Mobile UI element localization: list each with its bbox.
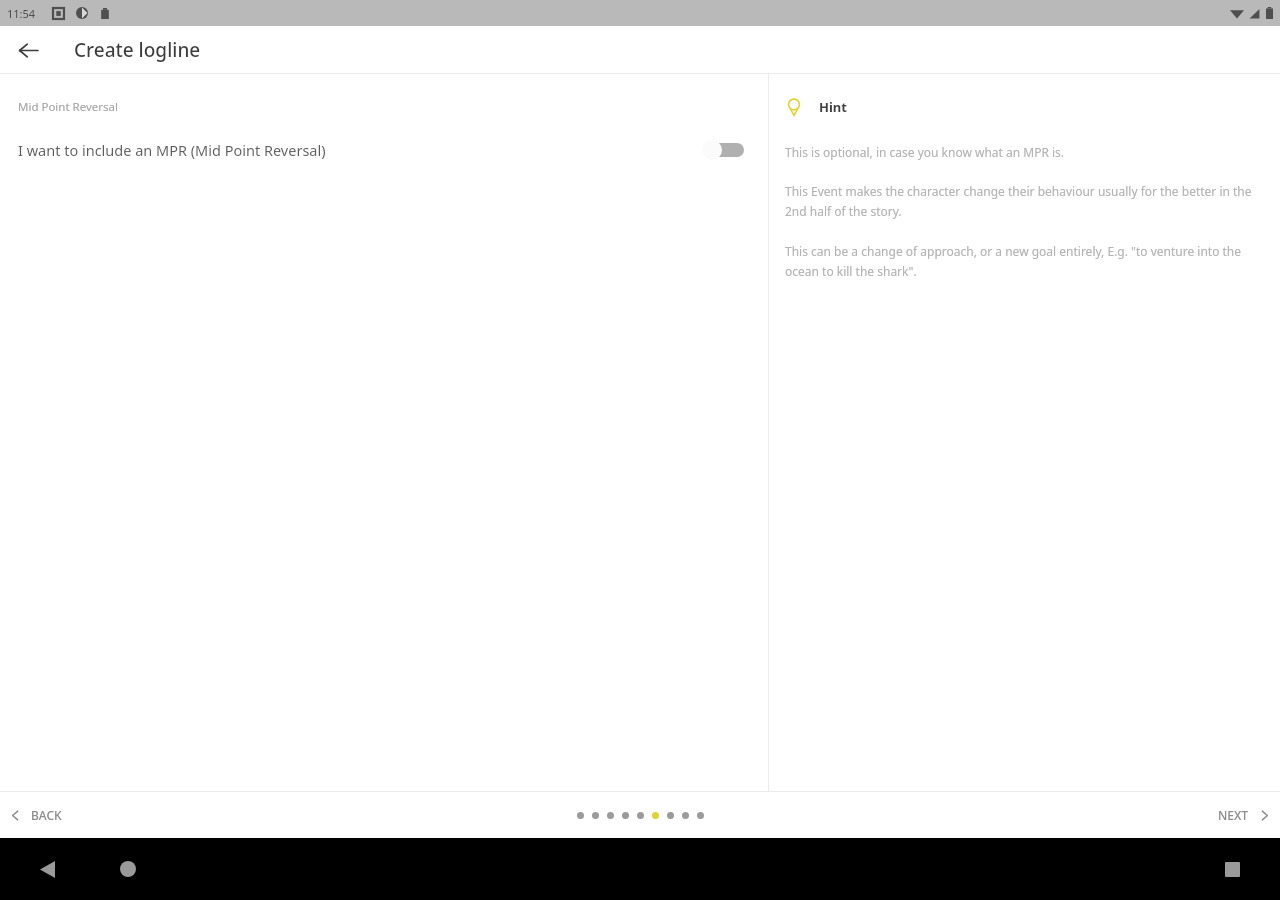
button[interactable]: BACK [0, 792, 78, 838]
staticText: BACK [31, 807, 62, 823]
staticText: 11:54 [7, 6, 36, 21]
staticText: NEXT [1218, 807, 1249, 823]
button[interactable]: I want to include an MPR (Mid Point Reve… [0, 132, 768, 168]
staticText: Mid Point Reversal [18, 99, 119, 115]
staticText: Hint [819, 98, 847, 116]
button[interactable]: Back [9, 31, 47, 69]
button[interactable]: Recents [1212, 849, 1252, 889]
button[interactable]: Home [108, 849, 148, 889]
button[interactable]: Toggle Mid Point Reversal [702, 137, 744, 163]
button[interactable]: NEXT [1202, 792, 1280, 838]
staticText: This can be a change of approach, or a n… [785, 243, 1258, 280]
staticText: This Event makes the character change th… [785, 183, 1258, 220]
staticText: I want to include an MPR (Mid Point Reve… [18, 140, 702, 160]
staticText: This is optional, in case you know what … [785, 144, 1065, 160]
staticText: Create logline [74, 37, 201, 63]
button[interactable]: Back [27, 849, 67, 889]
